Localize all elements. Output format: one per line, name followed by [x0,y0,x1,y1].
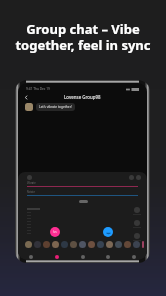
button[interactable]: Pattern [133,220,141,228]
button[interactable]: Pattern [133,207,141,215]
staticText: Let's vibrate together! [39,105,72,109]
button[interactable]: Home [24,251,38,260]
button[interactable]: Option [129,175,134,180]
staticText: Vibrate [27,181,36,185]
button[interactable]: Pattern [133,233,141,241]
staticText: lvs [53,230,57,234]
staticText: Lovense Group98 [64,94,101,100]
button[interactable]: Back [22,93,31,102]
button[interactable]: Toys [101,251,115,260]
button[interactable]: Me [127,251,141,260]
button[interactable]: Option [136,175,141,180]
staticText: Rotate [27,190,35,194]
button[interactable]: Chat [50,251,64,260]
staticText: Group chat – Vibe together, feel in sync [0,20,166,53]
button[interactable]: Vibrate control [50,227,60,237]
button[interactable]: Rotate control [103,227,113,237]
button[interactable]: Explore [76,251,90,260]
staticText: 9:41 Thu Dec 19 [26,87,50,91]
button[interactable]: Device [27,175,32,180]
